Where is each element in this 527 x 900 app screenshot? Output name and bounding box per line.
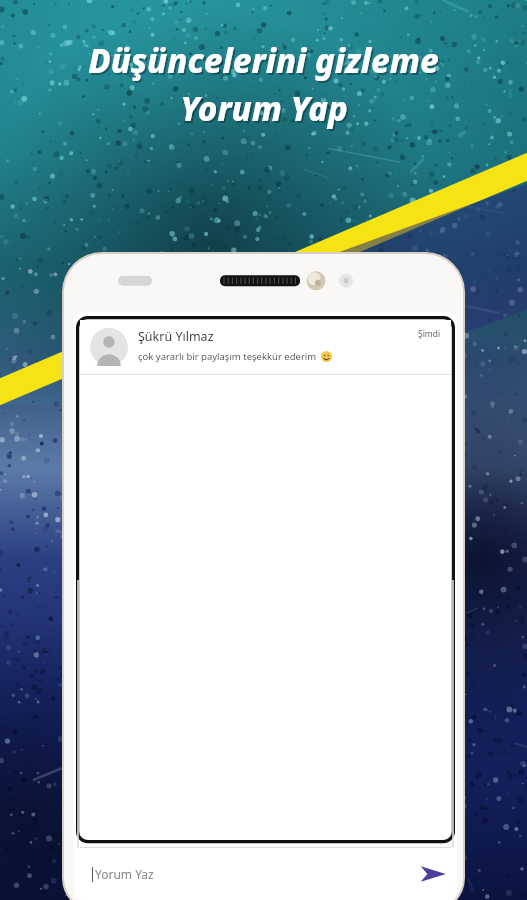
staticText: Şükrü Yılmaz [138, 328, 214, 345]
staticText: Yorum Yap [182, 88, 350, 133]
staticText: Düşüncelerini gizleme [88, 38, 439, 83]
staticText: Yorum Yaz [95, 866, 154, 882]
staticText: çok yararlı bir paylaşım teşekkür ederim [138, 350, 317, 363]
staticText: Şimdi [418, 328, 441, 340]
button[interactable]: Şükrü Yılmaz [80, 320, 451, 375]
staticText: Yorum Yap [180, 86, 348, 131]
button[interactable]: Gönder [409, 850, 457, 898]
staticText: Düşüncelerini gizleme [90, 40, 441, 85]
button[interactable]: Yorum Yaz [92, 866, 409, 882]
